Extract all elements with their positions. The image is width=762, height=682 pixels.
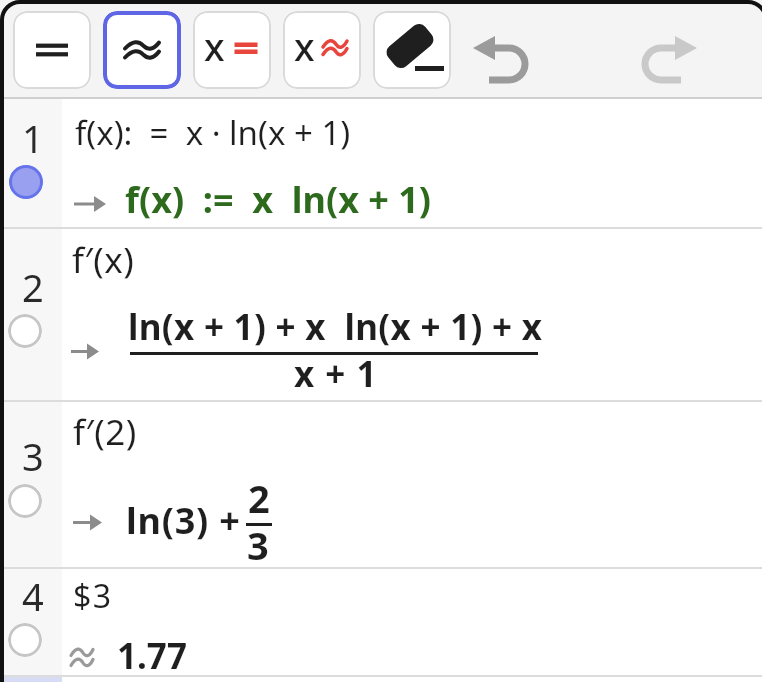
button[interactable]: [373, 11, 451, 89]
staticText: x: [294, 20, 315, 72]
staticText: f′(x): [72, 236, 135, 284]
button[interactable]: [103, 11, 181, 89]
button[interactable]: [471, 35, 537, 87]
button[interactable]: [13, 11, 91, 89]
button[interactable]: [8, 314, 42, 348]
staticText: 3: [22, 430, 44, 482]
staticText: ln(x + 1) + x ln(x + 1) + x: [128, 303, 543, 351]
staticText: 2: [248, 472, 270, 524]
staticText: f′(2): [73, 408, 137, 456]
button[interactable]: [0, 99, 762, 227]
button[interactable]: [0, 569, 762, 675]
staticText: ln(3) +: [126, 496, 241, 545]
button[interactable]: [193, 11, 271, 89]
staticText: 1: [22, 112, 44, 164]
button[interactable]: [8, 484, 42, 518]
button[interactable]: [0, 402, 762, 567]
button[interactable]: [8, 623, 42, 657]
button[interactable]: [633, 35, 699, 87]
button[interactable]: [9, 165, 43, 199]
button[interactable]: [283, 11, 361, 89]
staticText: f(x): = x · ln(x + 1): [75, 110, 351, 155]
staticText: 4: [22, 570, 44, 622]
staticText: 1.77: [117, 632, 187, 680]
button[interactable]: [0, 229, 762, 400]
staticText: 3: [247, 519, 269, 571]
staticText: $3: [73, 574, 113, 618]
staticText: x + 1: [294, 350, 378, 398]
staticText: x: [204, 20, 225, 72]
staticText: 2: [22, 261, 44, 313]
staticText: f(x) := x ln(x + 1): [125, 175, 432, 224]
